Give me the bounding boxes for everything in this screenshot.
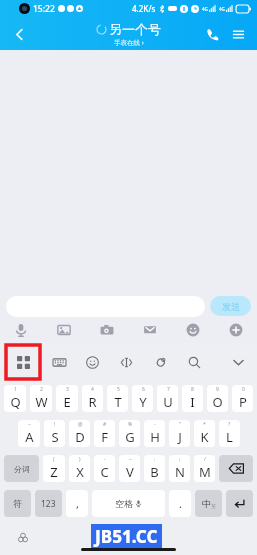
button[interactable]: Gallery [53,319,75,341]
button[interactable]: 2 [30,385,52,412]
button[interactable]: , [66,490,88,517]
staticText: " [179,421,182,428]
button[interactable]: % [119,420,140,447]
button[interactable]: Keyboard [48,351,70,373]
button[interactable]: 7 [157,385,178,412]
staticText: C [100,463,109,481]
staticText: 发送 [222,301,240,312]
staticText: % [128,421,133,428]
button[interactable]: 8 [182,385,203,412]
button[interactable]: Call [199,21,225,47]
button[interactable]: Card [139,319,161,341]
button[interactable]: " [169,420,190,447]
staticText: Z [50,463,58,481]
staticText: X [76,463,84,481]
button[interactable]: Back [4,19,34,49]
button[interactable]: ( [43,455,65,482]
staticText: 手表在线 › [114,38,144,47]
staticText: N [175,463,185,481]
staticText: W [35,393,48,411]
button[interactable]: 0 [232,385,253,412]
button[interactable]: 3 [56,385,78,412]
staticText: P [239,393,247,411]
button[interactable]: ~ [18,420,40,447]
staticText: 7 [167,386,170,393]
button[interactable]: Enter [226,490,253,517]
staticText: ) [79,456,81,463]
button[interactable]: / [194,455,215,482]
staticText: . [179,496,182,511]
button[interactable]: Input method logo [14,529,32,547]
staticText: H [150,428,160,446]
staticText: 9 [216,386,219,393]
button[interactable]: Clip [149,351,171,373]
button[interactable]: 6 [132,385,153,412]
staticText: R [88,393,97,411]
button[interactable]: Voice [10,319,32,341]
staticText: J [178,428,182,446]
button[interactable]: ! [44,420,65,447]
staticText: / [204,456,206,463]
button[interactable]: 9 [207,385,228,412]
staticText: 4G [219,6,225,12]
button[interactable]: # [94,420,115,447]
staticText: V [126,463,134,481]
button[interactable]: : [144,455,165,482]
button[interactable]: 4 [82,385,103,412]
button[interactable]: Emoji [182,319,204,341]
button[interactable]: - [94,455,115,482]
button[interactable]: 空格 [92,490,165,517]
button[interactable]: Cursor [115,351,137,373]
button[interactable]: 另一个号 [97,21,161,47]
button[interactable]: 1 [4,385,26,412]
button[interactable]: * [194,420,215,447]
staticText: 15:22 [33,3,55,15]
button[interactable]: ; [169,455,190,482]
staticText: , [76,496,79,511]
staticText: 英 [211,503,216,509]
button[interactable]: ? [219,420,240,447]
staticText: U [163,393,173,411]
button[interactable]: Emoji [81,351,103,373]
staticText: 4 [91,386,94,393]
button[interactable]: ) [69,455,90,482]
button[interactable]: Backspace [219,455,253,482]
staticText: Y [139,393,147,411]
staticText: 符 [13,498,22,509]
staticText: 另一个号 [109,21,161,37]
button[interactable]: Camera [96,319,118,341]
staticText: 6 [142,386,145,393]
button[interactable]: 中 [195,490,222,517]
staticText: 0 [242,386,245,393]
button[interactable]: - [144,420,165,447]
button[interactable]: 发送 [210,296,251,316]
staticText: ( [53,456,55,463]
staticText: B [150,463,159,481]
button[interactable]: More [225,319,247,341]
staticText: @ [78,421,83,428]
button[interactable]: ~ [119,455,140,482]
staticText: D [75,428,85,446]
button[interactable]: . [169,490,191,517]
staticText: L [226,428,233,446]
button[interactable]: Collapse [227,351,249,373]
staticText: - [104,456,106,463]
staticText: # [103,421,107,428]
staticText: A [25,428,34,446]
button[interactable]: @ [69,420,90,447]
staticText: T [114,393,122,411]
button[interactable]: Search [183,351,205,373]
staticText: 中 [202,498,211,509]
button[interactable]: Menu [225,21,251,47]
staticText: 空格 [115,498,133,509]
button[interactable]: 符 [4,490,31,517]
button[interactable]: Apps [6,345,40,379]
staticText: ? [228,421,231,428]
staticText: 1 [14,386,17,393]
button[interactable]: 123 [35,490,62,517]
staticText: 5 [117,386,120,393]
button[interactable]: 分词 [4,455,39,482]
button[interactable]: 5 [107,385,128,412]
staticText: 123 [41,498,56,510]
